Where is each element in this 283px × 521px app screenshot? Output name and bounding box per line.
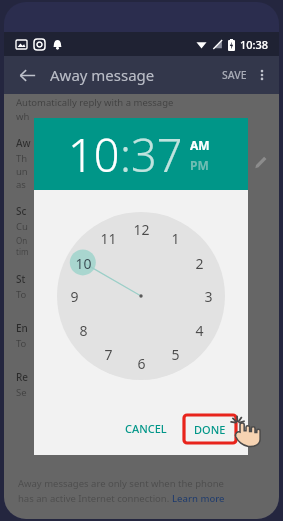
staticText: 10 [75,254,92,273]
staticText: Se [16,386,27,399]
staticText: 6 [137,354,146,373]
staticText: 8 [79,321,88,340]
button[interactable]: 1 [163,226,187,250]
staticText: Away message [50,65,155,85]
staticText: PM [190,157,209,173]
staticText: : [120,124,131,185]
staticText: 10:38 [240,37,269,52]
button[interactable]: 12 [129,217,153,241]
button[interactable]: PM [190,157,209,173]
staticText: Cu [16,220,28,233]
button[interactable]: CANCEL [116,415,176,442]
button[interactable]: 9 [62,284,86,308]
staticText: 2 [195,254,204,273]
staticText: St [16,272,26,286]
staticText: CANCEL [125,421,167,436]
staticText: 12 [133,220,150,239]
staticText: On [16,235,28,246]
button[interactable]: 8 [71,318,95,342]
staticText: To [16,288,27,301]
staticText: 37 [131,124,183,185]
staticText: Re [16,370,29,384]
staticText: Learn more [172,492,225,505]
button[interactable]: 10 [71,251,95,275]
button[interactable]: DONE [182,413,238,445]
staticText: Aw [16,136,31,150]
staticText: DONE [194,422,226,437]
button[interactable]: Learn more [172,492,225,505]
button[interactable]: SAVE [218,64,251,86]
staticText: Automatically reply with a message [16,96,174,109]
button[interactable]: 5 [163,342,187,366]
staticText: SAVE [222,68,247,82]
button[interactable]: 10 [68,124,120,185]
staticText: as [16,178,26,191]
staticText: 11 [100,229,117,248]
button[interactable]: AM [190,137,210,153]
staticText: To [16,337,27,350]
staticText: 1 [171,229,180,248]
staticText: 10 [68,124,120,185]
staticText: AM [190,137,210,153]
button[interactable]: 2 [187,251,211,275]
staticText: has an active Internet connection. [18,492,172,505]
staticText: 5 [171,345,180,364]
staticText: Away messages are only sent when the pho… [18,477,224,490]
staticText: un [16,165,28,178]
staticText: Sc [16,204,27,218]
staticText: En [16,321,28,335]
button[interactable]: 11 [96,226,120,250]
button[interactable]: 7 [96,342,120,366]
button[interactable]: 4 [187,318,211,342]
button[interactable]: Back [14,62,40,88]
staticText: 9 [70,287,79,306]
staticText: 7 [104,345,113,364]
staticText: 4 [195,321,204,340]
button[interactable]: More options [251,64,273,86]
button[interactable]: 37 [131,124,183,185]
staticText: Th [16,152,28,165]
button[interactable]: 3 [196,284,220,308]
staticText: tim [16,246,29,257]
button[interactable]: 6 [129,351,153,375]
staticText: 3 [204,287,213,306]
other: Edit [254,156,267,169]
staticText: wh [16,110,30,123]
